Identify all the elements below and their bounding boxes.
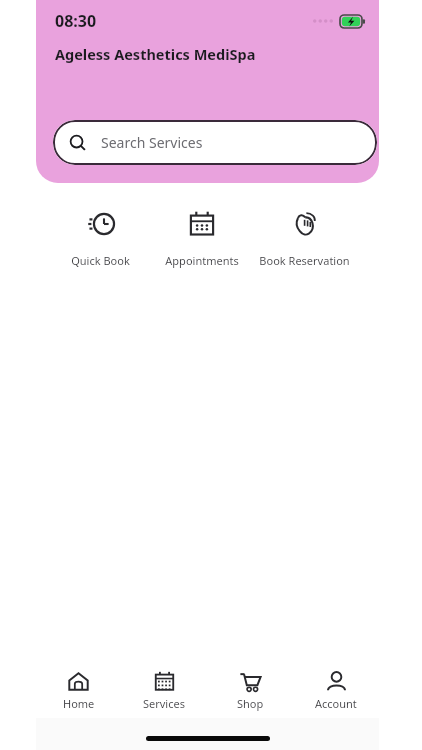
- staticText: Search Services: [101, 133, 203, 152]
- staticText: Account: [315, 696, 357, 711]
- staticText: Home: [63, 696, 95, 711]
- button[interactable]: Quick Book: [50, 209, 151, 268]
- button[interactable]: Shop: [207, 670, 293, 711]
- button[interactable]: Book Reservation: [253, 209, 355, 268]
- button[interactable]: Services: [121, 670, 207, 711]
- staticText: Appointments: [165, 253, 239, 268]
- staticText: Services: [143, 696, 185, 711]
- staticText: Ageless Aesthetics MediSpa: [55, 44, 256, 64]
- staticText: 08:30: [55, 10, 97, 32]
- staticText: Book Reservation: [259, 253, 350, 268]
- button[interactable]: Home: [36, 670, 121, 711]
- staticText: Shop: [237, 696, 264, 711]
- button[interactable]: Appointments: [151, 209, 253, 268]
- button[interactable]: Search Services: [53, 120, 377, 165]
- staticText: Quick Book: [71, 253, 130, 268]
- button[interactable]: Account: [293, 670, 379, 711]
